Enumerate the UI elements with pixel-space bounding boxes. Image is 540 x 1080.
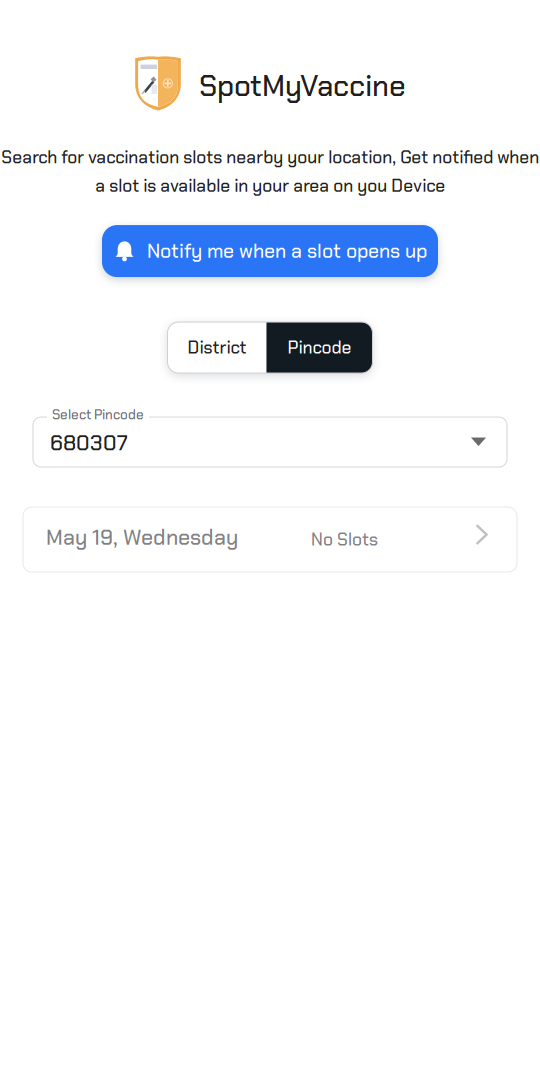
- staticText: 680307: [50, 429, 128, 457]
- staticText: Search for vaccination slots nearby your…: [1, 146, 539, 197]
- button[interactable]: May 19, Wednesday: [23, 507, 517, 572]
- staticText: May 19, Wednesday: [46, 524, 238, 551]
- staticText: Pincode: [287, 336, 351, 359]
- button[interactable]: Pincode: [266, 322, 372, 373]
- button[interactable]: Notify me when a slot opens up: [102, 225, 438, 277]
- button[interactable]: District: [167, 322, 266, 373]
- staticText: Select Pincode: [52, 406, 144, 423]
- staticText: SpotMyVaccine: [199, 67, 406, 105]
- staticText: No Slots: [311, 528, 378, 551]
- staticText: District: [187, 336, 246, 359]
- staticText: Notify me when a slot opens up: [147, 238, 427, 264]
